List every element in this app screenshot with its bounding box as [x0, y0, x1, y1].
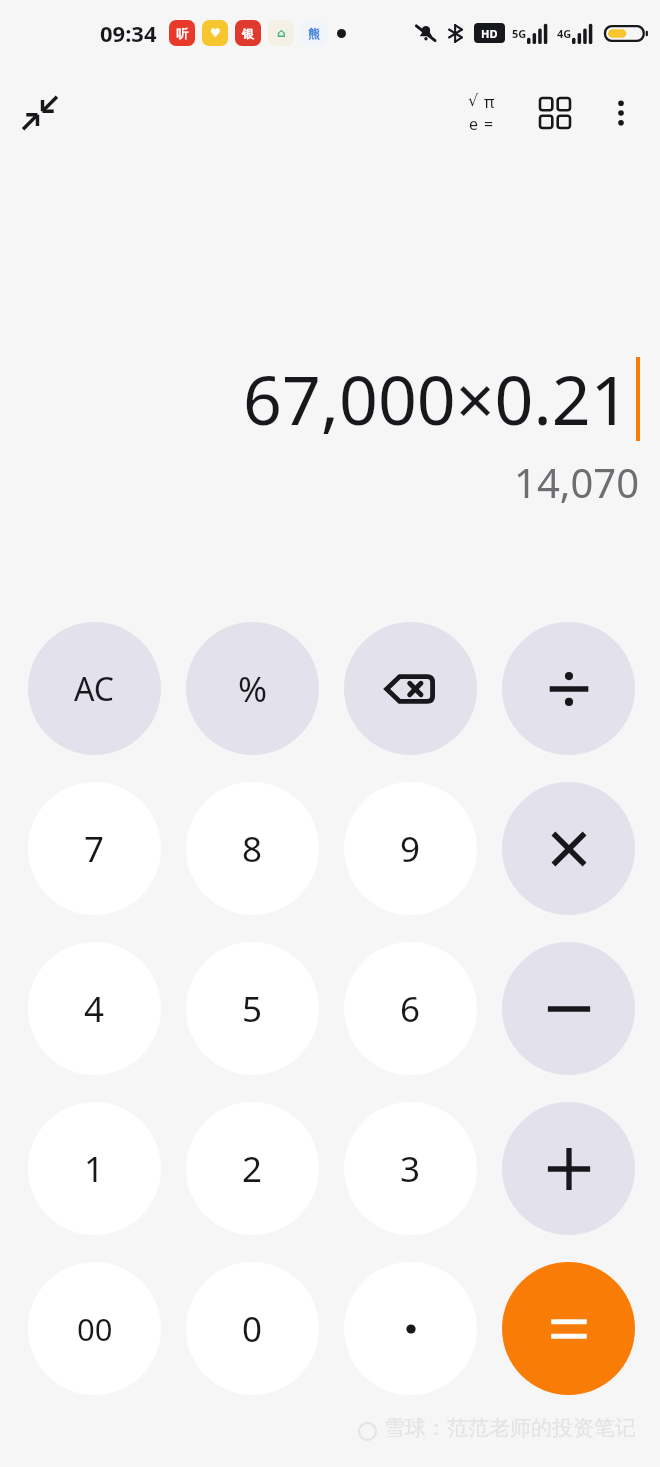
staticText: 5G [512, 26, 527, 41]
button[interactable]: 2 [186, 1102, 319, 1235]
staticText: 3 [400, 1145, 421, 1193]
staticText: = [484, 113, 494, 135]
staticText: 1 [84, 1145, 105, 1193]
button[interactable]: Collapse [12, 85, 68, 141]
button[interactable]: Divide [502, 622, 635, 755]
button[interactable]: More options [592, 84, 650, 142]
button[interactable]: 5 [186, 942, 319, 1075]
staticText: 雪球：范范老师的投资笔记 [384, 1415, 636, 1441]
button[interactable]: 6 [344, 942, 477, 1075]
button[interactable]: AC [28, 622, 161, 755]
staticText: ♥ [210, 26, 221, 40]
staticText: 7 [84, 825, 105, 873]
button[interactable]: Multiply [502, 782, 635, 915]
staticText: 9 [400, 825, 421, 873]
button[interactable]: Equals [502, 1262, 635, 1395]
button[interactable]: 8 [186, 782, 319, 915]
staticText: 银 [242, 26, 254, 41]
staticText: HD [481, 26, 498, 41]
staticText: 0 [242, 1305, 263, 1353]
button[interactable]: 9 [344, 782, 477, 915]
staticText: 14,070 [514, 455, 640, 509]
button[interactable]: Decimal point [344, 1262, 477, 1395]
button[interactable]: 0 [186, 1262, 319, 1395]
staticText: % [238, 665, 268, 713]
button[interactable]: Scientific [452, 84, 510, 142]
staticText: π [484, 91, 495, 113]
staticText: 6 [400, 985, 421, 1033]
staticText: 09:34 [100, 18, 157, 48]
button[interactable]: History [526, 84, 584, 142]
button[interactable]: 00 [28, 1262, 161, 1395]
button[interactable]: 3 [344, 1102, 477, 1235]
staticText: 67,000×0.21 [243, 352, 630, 445]
button[interactable]: Plus [502, 1102, 635, 1235]
button[interactable]: Backspace [344, 622, 477, 755]
staticText: 00 [77, 1308, 113, 1350]
button[interactable]: 4 [28, 942, 161, 1075]
staticText: √ [468, 91, 479, 110]
staticText: e [469, 113, 479, 135]
button[interactable]: 1 [28, 1102, 161, 1235]
staticText: AC [74, 667, 115, 711]
staticText: 4G [557, 26, 572, 41]
staticText: ⌂ [277, 26, 286, 40]
button[interactable]: % [186, 622, 319, 755]
staticText: 5 [242, 985, 263, 1033]
button[interactable]: 7 [28, 782, 161, 915]
staticText: 2 [242, 1145, 263, 1193]
staticText: 听 [176, 26, 188, 41]
button[interactable]: Minus [502, 942, 635, 1075]
staticText: 8 [242, 825, 263, 873]
staticText: 熊 [308, 26, 320, 41]
staticText: 4 [84, 985, 105, 1033]
